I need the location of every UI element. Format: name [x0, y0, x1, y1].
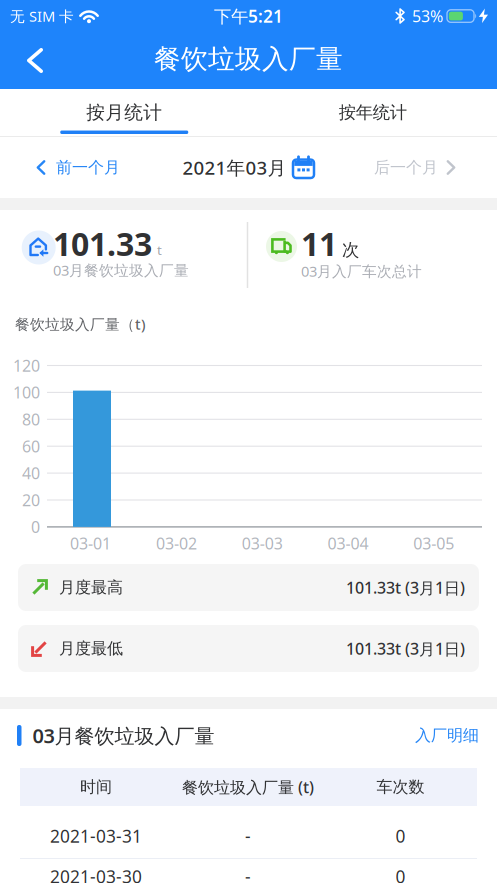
staticText: 03-01: [70, 533, 111, 554]
staticText: 月度最低: [59, 639, 123, 658]
staticText: 101.33t (3月1日): [346, 577, 465, 598]
staticText: 80: [22, 409, 40, 430]
staticText: 入厂明细: [415, 726, 479, 745]
staticText: 120: [13, 355, 40, 376]
staticText: 03-02: [156, 533, 197, 554]
staticText: 2021-03-31: [50, 824, 142, 847]
staticText: 餐饮垃圾入厂量: [154, 43, 343, 75]
staticText: 03-04: [327, 533, 368, 554]
button[interactable]: 返回: [0, 32, 59, 89]
staticText: 餐饮垃圾入厂量（t): [15, 314, 146, 334]
staticText: 03月餐饮垃圾入厂量: [32, 722, 214, 749]
staticText: 40: [22, 462, 40, 484]
staticText: 餐饮垃圾入厂量 (t): [182, 776, 314, 798]
staticText: 次: [342, 239, 359, 261]
button[interactable]: 按年统计: [248, 89, 497, 136]
staticText: 53%: [412, 5, 443, 27]
staticText: 按月统计: [86, 101, 162, 124]
staticText: 0: [395, 824, 405, 847]
staticText: 按年统计: [339, 102, 407, 123]
staticText: 无 SIM 卡: [10, 6, 74, 26]
button[interactable]: 前一个月: [0, 137, 120, 198]
staticText: 20: [22, 489, 40, 511]
staticText: 100: [13, 382, 40, 403]
button[interactable]: 入厂明细: [415, 726, 479, 745]
staticText: 2021-03-30: [50, 865, 142, 883]
staticText: 时间: [80, 777, 112, 797]
staticText: 101.33: [53, 222, 152, 265]
staticText: 03月餐饮垃圾入厂量: [53, 260, 189, 280]
staticText: 前一个月: [56, 158, 120, 177]
staticText: 03-05: [413, 533, 454, 554]
staticText: 11: [301, 222, 337, 265]
staticText: 03月入厂车次总计: [301, 261, 422, 281]
staticText: 后一个月: [374, 158, 438, 177]
staticText: 60: [22, 436, 40, 457]
staticText: 0: [395, 865, 405, 883]
staticText: 0: [31, 516, 40, 537]
staticText: -: [245, 865, 251, 883]
staticText: -: [245, 824, 251, 847]
button[interactable]: 后一个月: [374, 137, 497, 198]
staticText: 月度最高: [59, 578, 123, 597]
staticText: 03-03: [242, 533, 283, 554]
staticText: t: [157, 241, 162, 259]
button[interactable]: 按月统计: [0, 89, 248, 136]
staticText: 101.33t (3月1日): [346, 638, 465, 659]
staticText: 车次数: [376, 777, 424, 797]
button[interactable]: 选择月份: [182, 155, 314, 180]
staticText: 2021年03月: [182, 155, 286, 180]
staticText: 下午5:21: [214, 4, 283, 27]
